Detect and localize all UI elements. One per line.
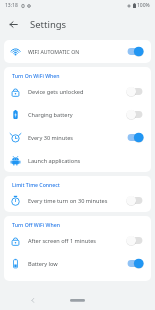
- button[interactable]: Device gets unlocked: [4, 80, 151, 103]
- staticText: WIFI AUTOMATIC ON: [28, 48, 80, 55]
- button[interactable]: WIFI AUTOMATIC ON: [4, 40, 151, 63]
- button[interactable]: On: [126, 132, 144, 143]
- staticText: Settings: [30, 18, 67, 31]
- button[interactable]: On: [126, 258, 144, 269]
- button[interactable]: Every 30 minutes: [4, 126, 151, 149]
- staticText: Every time turn on 30 minutes: [28, 197, 108, 205]
- staticText: Device gets unlocked: [28, 88, 84, 96]
- button[interactable]: Launch applications: [4, 149, 151, 172]
- button[interactable]: Battery low: [4, 252, 151, 275]
- staticText: Battery low: [28, 260, 58, 268]
- staticText: 13:18: [5, 2, 18, 9]
- button[interactable]: Back: [5, 16, 21, 32]
- button[interactable]: Off: [126, 109, 144, 120]
- button[interactable]: Off: [126, 235, 144, 246]
- button[interactable]: On: [126, 46, 144, 57]
- staticText: After screen off 1 minutes: [28, 237, 97, 245]
- staticText: 100%: [137, 2, 150, 9]
- staticText: Limit Time Connect: [12, 181, 60, 188]
- staticText: Launch applications: [28, 157, 81, 165]
- staticText: Charging battery: [28, 111, 73, 119]
- staticText: Turn Off WiFi When: [12, 221, 60, 228]
- button[interactable]: After screen off 1 minutes: [4, 229, 151, 252]
- staticText: Turn On WiFi When: [12, 72, 60, 79]
- staticText: Every 30 minutes: [28, 134, 74, 142]
- button[interactable]: Every time turn on 30 minutes: [4, 189, 151, 212]
- button[interactable]: Off: [126, 86, 144, 97]
- button[interactable]: Charging battery: [4, 103, 151, 126]
- button[interactable]: Off: [126, 195, 144, 206]
